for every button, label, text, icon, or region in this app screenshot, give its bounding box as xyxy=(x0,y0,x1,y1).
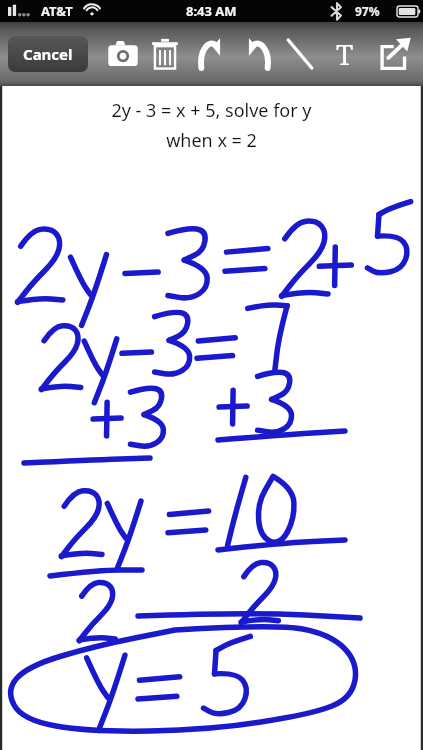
staticText: AT&T xyxy=(41,2,73,20)
staticText: 2y - 3 = x + 5, solve for y xyxy=(111,98,312,123)
button[interactable]: Text xyxy=(324,33,366,75)
button[interactable]: Cancel xyxy=(8,36,88,72)
staticText: 97% xyxy=(355,3,380,19)
staticText: 8:43 AM xyxy=(186,2,237,20)
button[interactable]: Draw line xyxy=(279,33,321,75)
button[interactable]: Share xyxy=(375,33,417,75)
button[interactable]: Camera xyxy=(102,33,144,75)
staticText: T xyxy=(336,35,354,73)
button[interactable]: Delete xyxy=(144,33,186,75)
button[interactable]: Redo xyxy=(236,33,278,75)
staticText: when x = 2 xyxy=(166,128,257,153)
staticText: Cancel xyxy=(23,44,73,64)
button[interactable]: Undo xyxy=(191,33,233,75)
